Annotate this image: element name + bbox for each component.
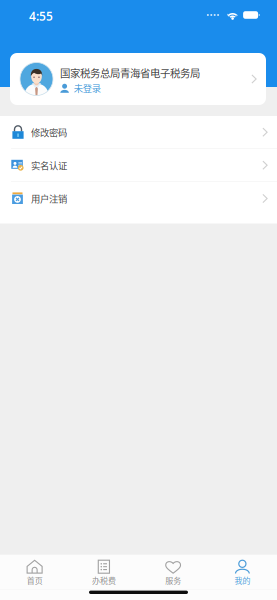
button[interactable]: 国家税务总局青海省电子税务局 (10, 53, 266, 105)
button[interactable]: 我的 (208, 554, 277, 589)
staticText: 实名认证 (31, 158, 67, 172)
staticText: 我的 (234, 574, 250, 586)
button[interactable]: 办税费 (69, 554, 138, 589)
button[interactable]: 首页 (0, 554, 69, 589)
button[interactable]: 实名认证 (0, 149, 277, 182)
staticText: 用户注销 (31, 192, 67, 205)
button[interactable]: 修改密码 (0, 116, 277, 149)
staticText: 办税费 (92, 574, 116, 586)
staticText: 修改密码 (31, 125, 67, 139)
staticText: 未登录 (74, 81, 101, 95)
staticText: 服务 (165, 574, 181, 586)
button[interactable]: 服务 (138, 554, 208, 589)
staticText: 4:55 (29, 8, 53, 24)
staticText: 首页 (27, 574, 43, 586)
staticText: 国家税务总局青海省电子税务局 (60, 65, 200, 80)
button[interactable]: 用户注销 (0, 182, 277, 215)
